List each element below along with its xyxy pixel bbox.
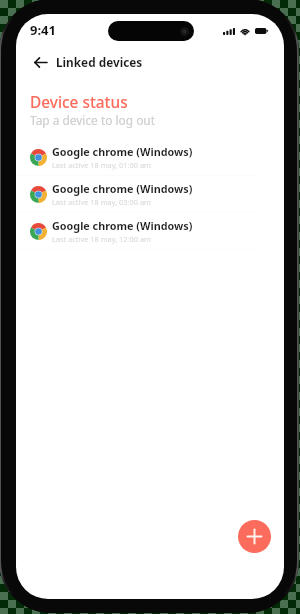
staticText: Google chrome (Windows) <box>52 218 193 233</box>
staticText: Google chrome (Windows) <box>52 144 193 159</box>
staticText: Google chrome (Windows) <box>52 181 193 196</box>
staticText: Linked devices <box>56 54 143 70</box>
button[interactable]: Google chrome (Windows) <box>16 139 284 176</box>
staticText: Last active 18 may, 03:00 am <box>52 197 151 207</box>
staticText: Device status <box>30 92 128 113</box>
button[interactable]: Back <box>28 50 52 74</box>
button[interactable]: Google chrome (Windows) <box>16 176 284 213</box>
staticText: 9:41 <box>30 21 56 39</box>
staticText: Tap a device to log out <box>30 112 155 128</box>
staticText: Last active 18 may, 01:00 am <box>52 160 151 170</box>
button[interactable]: Google chrome (Windows) <box>16 213 284 250</box>
staticText: Last active 18 may, 12:00 am <box>52 234 151 244</box>
button[interactable]: Add device <box>238 520 271 553</box>
